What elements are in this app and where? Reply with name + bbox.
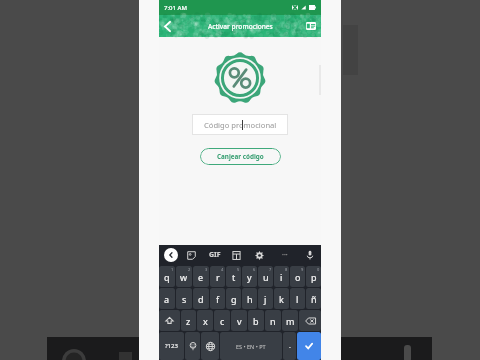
button[interactable]: r bbox=[210, 266, 225, 287]
staticText: i bbox=[280, 271, 283, 283]
staticText: 5 bbox=[237, 267, 240, 272]
button[interactable]: Código promocional bbox=[192, 114, 288, 135]
button[interactable]: Back bbox=[159, 15, 176, 37]
staticText: 8 bbox=[285, 267, 288, 272]
staticText: t bbox=[232, 271, 236, 283]
button[interactable]: My coupons bbox=[301, 16, 321, 36]
staticText: 4 bbox=[221, 267, 224, 272]
staticText: z bbox=[186, 315, 191, 327]
staticText: GIF bbox=[209, 250, 221, 260]
staticText: f bbox=[216, 293, 220, 305]
button[interactable]: . bbox=[283, 332, 296, 360]
button[interactable]: t bbox=[226, 266, 241, 287]
other: Clipboard bbox=[232, 251, 241, 260]
button[interactable]: u bbox=[258, 266, 273, 287]
button[interactable]: q bbox=[159, 266, 175, 287]
button[interactable]: b bbox=[248, 310, 264, 331]
other: Stickers bbox=[187, 251, 196, 260]
button[interactable]: k bbox=[274, 288, 289, 309]
button[interactable]: y bbox=[242, 266, 257, 287]
staticText: p bbox=[311, 271, 317, 283]
staticText: m bbox=[286, 315, 295, 327]
button[interactable]: a bbox=[159, 288, 175, 309]
other: Change language bbox=[206, 342, 215, 351]
staticText: 0 bbox=[317, 267, 320, 272]
staticText: ñ bbox=[311, 293, 317, 305]
button[interactable]: GIF bbox=[209, 250, 221, 260]
button[interactable]: Backspace bbox=[299, 310, 321, 331]
staticText: a bbox=[164, 293, 170, 305]
button[interactable]: ñ bbox=[306, 288, 321, 309]
staticText: v bbox=[237, 315, 242, 327]
other: Voice input bbox=[306, 250, 314, 260]
button[interactable]: j bbox=[258, 288, 273, 309]
button[interactable]: i bbox=[274, 266, 289, 287]
button[interactable]: m bbox=[282, 310, 298, 331]
staticText: 9 bbox=[301, 267, 304, 272]
button[interactable]: c bbox=[214, 310, 230, 331]
button[interactable]: Shift bbox=[159, 310, 180, 331]
staticText: Código promocional bbox=[204, 120, 277, 130]
staticText: d bbox=[198, 293, 204, 305]
button[interactable]: h bbox=[242, 288, 257, 309]
staticText: 2 bbox=[188, 267, 191, 272]
staticText: j bbox=[264, 293, 267, 305]
other: Backspace bbox=[305, 317, 316, 325]
staticText: ••• bbox=[282, 252, 288, 259]
button[interactable]: w bbox=[176, 266, 192, 287]
staticText: Canjear código bbox=[217, 152, 264, 161]
staticText: u bbox=[263, 271, 269, 283]
staticText: 6 bbox=[253, 267, 256, 272]
button[interactable]: z bbox=[181, 310, 196, 331]
button[interactable]: l bbox=[290, 288, 305, 309]
button[interactable]: o bbox=[290, 266, 305, 287]
staticText: k bbox=[279, 293, 284, 305]
button[interactable]: ?123 bbox=[159, 332, 184, 360]
other: Emoji bbox=[189, 342, 197, 350]
button[interactable]: d bbox=[193, 288, 209, 309]
button[interactable]: s bbox=[176, 288, 192, 309]
button[interactable]: v bbox=[231, 310, 247, 331]
staticText: q bbox=[164, 271, 170, 283]
button[interactable]: g bbox=[226, 288, 241, 309]
other: Keyboard settings bbox=[255, 251, 264, 260]
button[interactable]: Canjear código bbox=[200, 148, 281, 165]
other: Shift bbox=[165, 316, 174, 325]
staticText: s bbox=[182, 293, 187, 305]
staticText: c bbox=[220, 315, 225, 327]
staticText: ?123 bbox=[165, 342, 178, 350]
staticText: 7:01 AM bbox=[164, 4, 187, 12]
staticText: l bbox=[296, 293, 299, 305]
staticText: w bbox=[180, 271, 188, 283]
button[interactable]: n bbox=[265, 310, 281, 331]
button[interactable]: x bbox=[197, 310, 213, 331]
staticText: e bbox=[198, 271, 204, 283]
button[interactable]: Enter bbox=[297, 332, 321, 360]
staticText: g bbox=[231, 293, 237, 305]
staticText: n bbox=[270, 315, 276, 327]
staticText: o bbox=[295, 271, 301, 283]
button[interactable]: p bbox=[306, 266, 321, 287]
staticText: 3 bbox=[205, 267, 208, 272]
staticText: x bbox=[203, 315, 208, 327]
button[interactable]: Change language bbox=[201, 332, 219, 360]
staticText: y bbox=[247, 271, 252, 283]
staticText: 1 bbox=[171, 267, 174, 272]
staticText: Activar promociones bbox=[208, 22, 273, 31]
button[interactable]: ES • EN • PT bbox=[220, 332, 282, 360]
staticText: b bbox=[253, 315, 259, 327]
staticText: ES • EN • PT bbox=[236, 343, 266, 350]
button[interactable]: Emoji bbox=[185, 332, 200, 360]
button[interactable]: f bbox=[210, 288, 225, 309]
staticText: r bbox=[216, 271, 220, 283]
button[interactable]: Close keyboard toolbar bbox=[164, 248, 178, 262]
button[interactable]: e bbox=[193, 266, 209, 287]
staticText: . bbox=[289, 341, 291, 351]
staticText: 7 bbox=[269, 267, 272, 272]
staticText: h bbox=[247, 293, 253, 305]
